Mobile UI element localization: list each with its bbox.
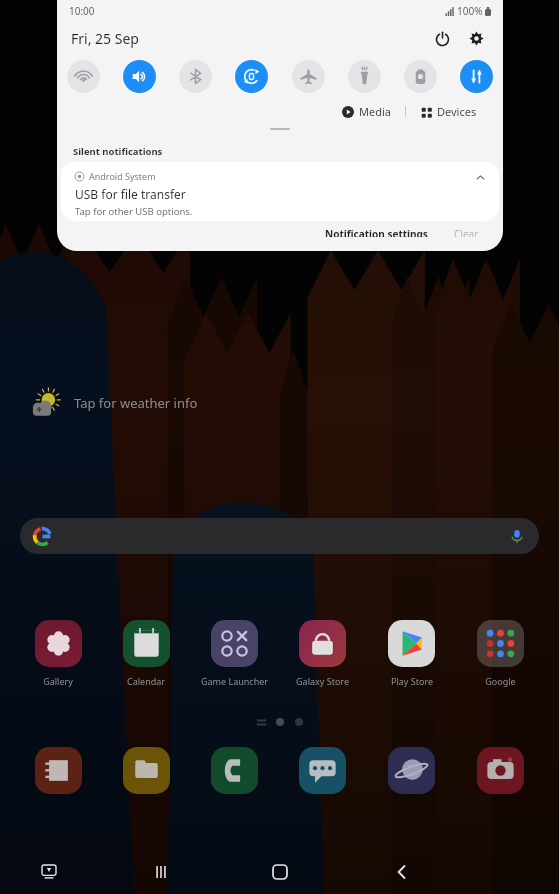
staticText: USB for file transfer — [75, 186, 186, 202]
button[interactable]: Collapse — [471, 168, 489, 186]
button[interactable]: Google — [456, 620, 545, 687]
staticText: Calendar — [127, 675, 165, 687]
button[interactable]: Home — [263, 855, 297, 889]
button[interactable]: Contacts — [14, 747, 102, 794]
button[interactable]: Tap for weather info — [26, 383, 198, 423]
button[interactable]: Settings — [463, 25, 489, 51]
button[interactable]: Flight mode — [292, 60, 325, 93]
button[interactable]: Auto rotate — [235, 60, 268, 93]
staticText: Notification settings — [325, 227, 428, 237]
button[interactable]: Camera — [456, 747, 545, 794]
staticText: Fri, 25 Sep — [71, 29, 139, 48]
button[interactable]: Game Launcher — [190, 620, 278, 687]
button[interactable]: Power saving — [404, 60, 437, 93]
button[interactable]: Recents — [144, 855, 178, 889]
button[interactable]: Sound — [123, 60, 156, 93]
staticText: Android System — [89, 170, 156, 182]
staticText: Clear — [454, 227, 479, 237]
staticText: Tap for weather info — [74, 394, 198, 412]
button[interactable]: Flashlight — [348, 60, 381, 93]
button[interactable]: Media — [338, 101, 395, 122]
staticText: Media — [359, 104, 391, 119]
button[interactable]: Play Store — [367, 620, 456, 687]
staticText: 100% — [457, 4, 483, 18]
button[interactable]: Phone — [190, 747, 278, 794]
button[interactable]: Power — [429, 25, 455, 51]
button[interactable]: Wi-Fi — [67, 60, 100, 93]
button[interactable]: Internet — [367, 747, 456, 794]
button[interactable]: Notification settings — [319, 221, 434, 243]
staticText: Tap for other USB options. — [75, 205, 193, 218]
button[interactable]: My Files — [102, 747, 190, 794]
button[interactable] — [20, 518, 539, 554]
button[interactable]: Gallery — [14, 620, 102, 687]
button[interactable]: Mobile data — [460, 60, 493, 93]
staticText: Google — [485, 675, 516, 687]
button[interactable]: Clear — [448, 221, 485, 243]
button[interactable]: Bluetooth — [179, 60, 212, 93]
button[interactable]: Keyboard — [34, 857, 64, 887]
staticText: 10:00 — [69, 4, 95, 18]
staticText: Game Launcher — [201, 675, 268, 687]
button[interactable]: Galaxy Store — [278, 620, 367, 687]
button[interactable]: Android System — [61, 162, 499, 221]
staticText: Galaxy Store — [296, 675, 349, 687]
button[interactable]: Messages — [278, 747, 367, 794]
staticText: Play Store — [391, 675, 433, 687]
button[interactable]: Back — [385, 855, 419, 889]
staticText: Gallery — [43, 675, 73, 687]
button[interactable]: Devices — [416, 101, 481, 122]
button[interactable]: Calendar — [102, 620, 190, 687]
staticText: Silent notifications — [73, 145, 163, 158]
staticText: Devices — [437, 104, 477, 119]
